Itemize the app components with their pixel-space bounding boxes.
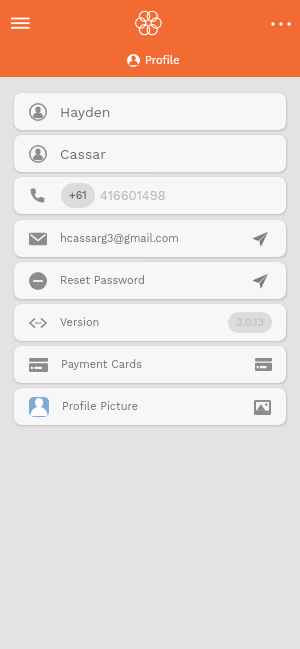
staticText: Cassar (60, 146, 106, 162)
staticText: Hayden (60, 104, 111, 120)
staticText: hcassarg3@gmail.com (60, 232, 179, 245)
button[interactable]: More options (266, 10, 296, 40)
button[interactable]: Cassar (14, 135, 286, 172)
staticText: 416601498 (100, 188, 166, 203)
button[interactable]: Profile (123, 50, 184, 71)
staticText: +61 (69, 189, 87, 202)
button[interactable]: Reset Password (14, 262, 286, 299)
button[interactable]: +61 (14, 177, 286, 214)
button[interactable]: Send (248, 269, 272, 293)
button[interactable]: Open navigation menu (3, 10, 33, 40)
staticText: 3.0.13 (236, 316, 264, 329)
button[interactable]: Payment Cards (14, 346, 286, 383)
button[interactable]: hcassarg3@gmail.com (14, 220, 286, 257)
staticText: Payment Cards (61, 358, 142, 371)
staticText: Profile (145, 54, 180, 67)
button[interactable]: Send (248, 227, 272, 251)
button[interactable]: Hayden (14, 93, 286, 130)
button[interactable]: Profile Picture (14, 388, 286, 425)
staticText: Profile Picture (62, 400, 139, 413)
button[interactable]: Version (14, 304, 286, 341)
staticText: Reset Password (60, 274, 145, 287)
staticText: Version (60, 316, 100, 329)
button[interactable]: Change profile picture (252, 397, 272, 417)
